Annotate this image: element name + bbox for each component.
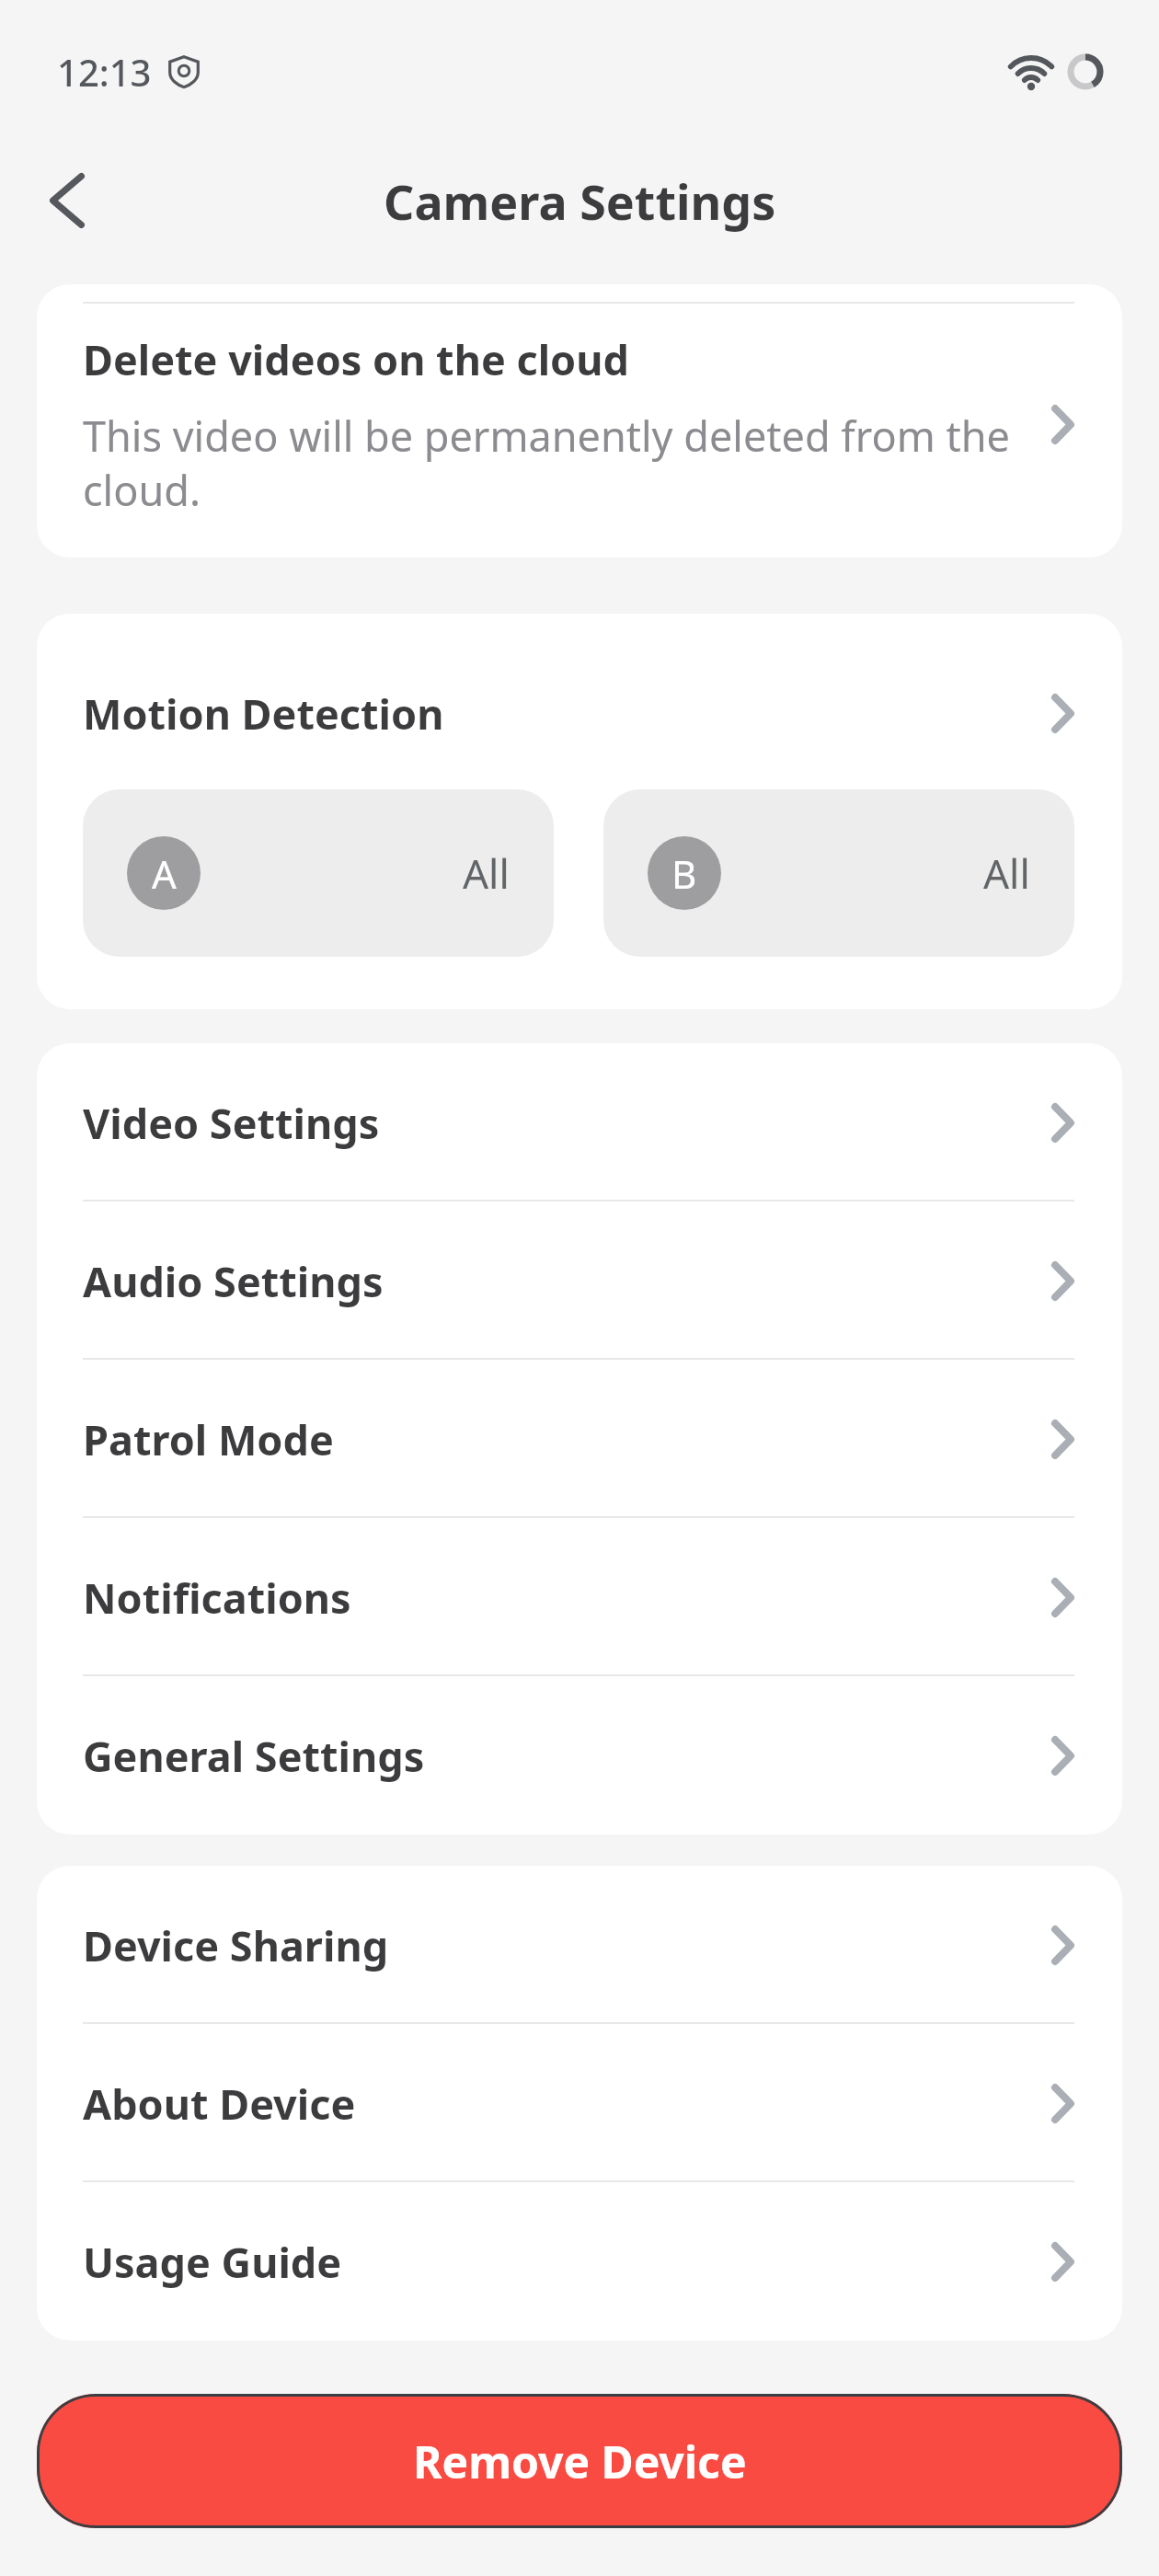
staticText: A xyxy=(152,847,177,900)
staticText: Usage Guide xyxy=(83,2234,342,2290)
button[interactable]: Motion Detection xyxy=(83,685,1074,742)
button[interactable]: About Device xyxy=(37,2024,1122,2182)
staticText: Audio Settings xyxy=(83,1253,384,1309)
button[interactable] xyxy=(37,170,98,231)
staticText: Device Sharing xyxy=(83,1917,389,1973)
staticText: B xyxy=(671,847,697,900)
staticText: Camera Settings xyxy=(384,168,776,234)
staticText: 12:13 xyxy=(57,47,152,97)
button[interactable]: Delete videos on the cloud xyxy=(37,284,1122,558)
button[interactable]: Audio Settings xyxy=(37,1202,1122,1360)
button[interactable]: Usage Guide xyxy=(37,2182,1122,2340)
staticText: General Settings xyxy=(83,1728,425,1784)
staticText: Patrol Mode xyxy=(83,1411,334,1467)
staticText: This video will be permanently deleted f… xyxy=(83,408,1010,518)
staticText: Delete videos on the cloud xyxy=(83,331,629,387)
staticText: About Device xyxy=(83,2076,356,2132)
button[interactable]: B xyxy=(603,789,1074,957)
button[interactable]: Patrol Mode xyxy=(37,1360,1122,1518)
button[interactable]: Remove Device xyxy=(37,2394,1122,2528)
staticText: Video Settings xyxy=(83,1095,380,1151)
staticText: Remove Device xyxy=(413,2432,747,2491)
staticText: All xyxy=(463,845,510,901)
staticText: Motion Detection xyxy=(83,685,444,742)
button[interactable]: Device Sharing xyxy=(37,1866,1122,2024)
button[interactable]: A xyxy=(83,789,554,957)
staticText: Notifications xyxy=(83,1570,351,1626)
button[interactable]: Notifications xyxy=(37,1518,1122,1676)
button[interactable]: General Settings xyxy=(37,1676,1122,1834)
button[interactable]: Video Settings xyxy=(37,1043,1122,1202)
staticText: All xyxy=(983,845,1030,901)
